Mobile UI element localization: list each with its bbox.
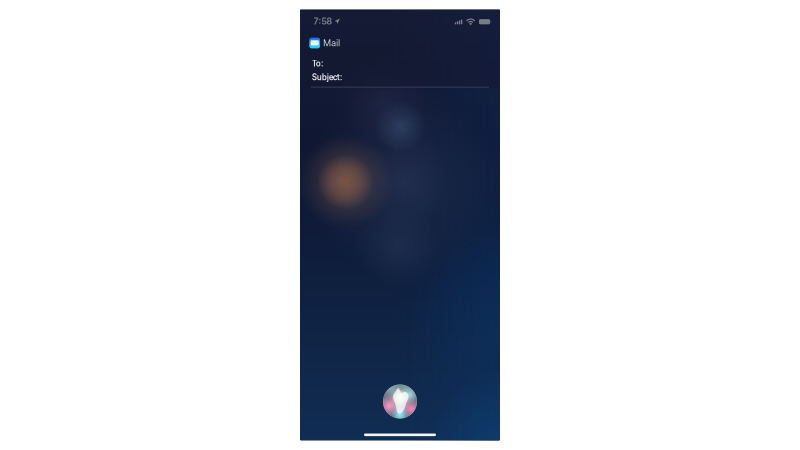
staticText: To: [312,59,323,68]
staticText: Mail [323,37,340,48]
staticText: 7:58 [313,16,332,27]
button[interactable]: Siri [383,384,417,418]
staticText: Subject: [312,72,342,82]
button[interactable]: Mail [309,36,340,49]
